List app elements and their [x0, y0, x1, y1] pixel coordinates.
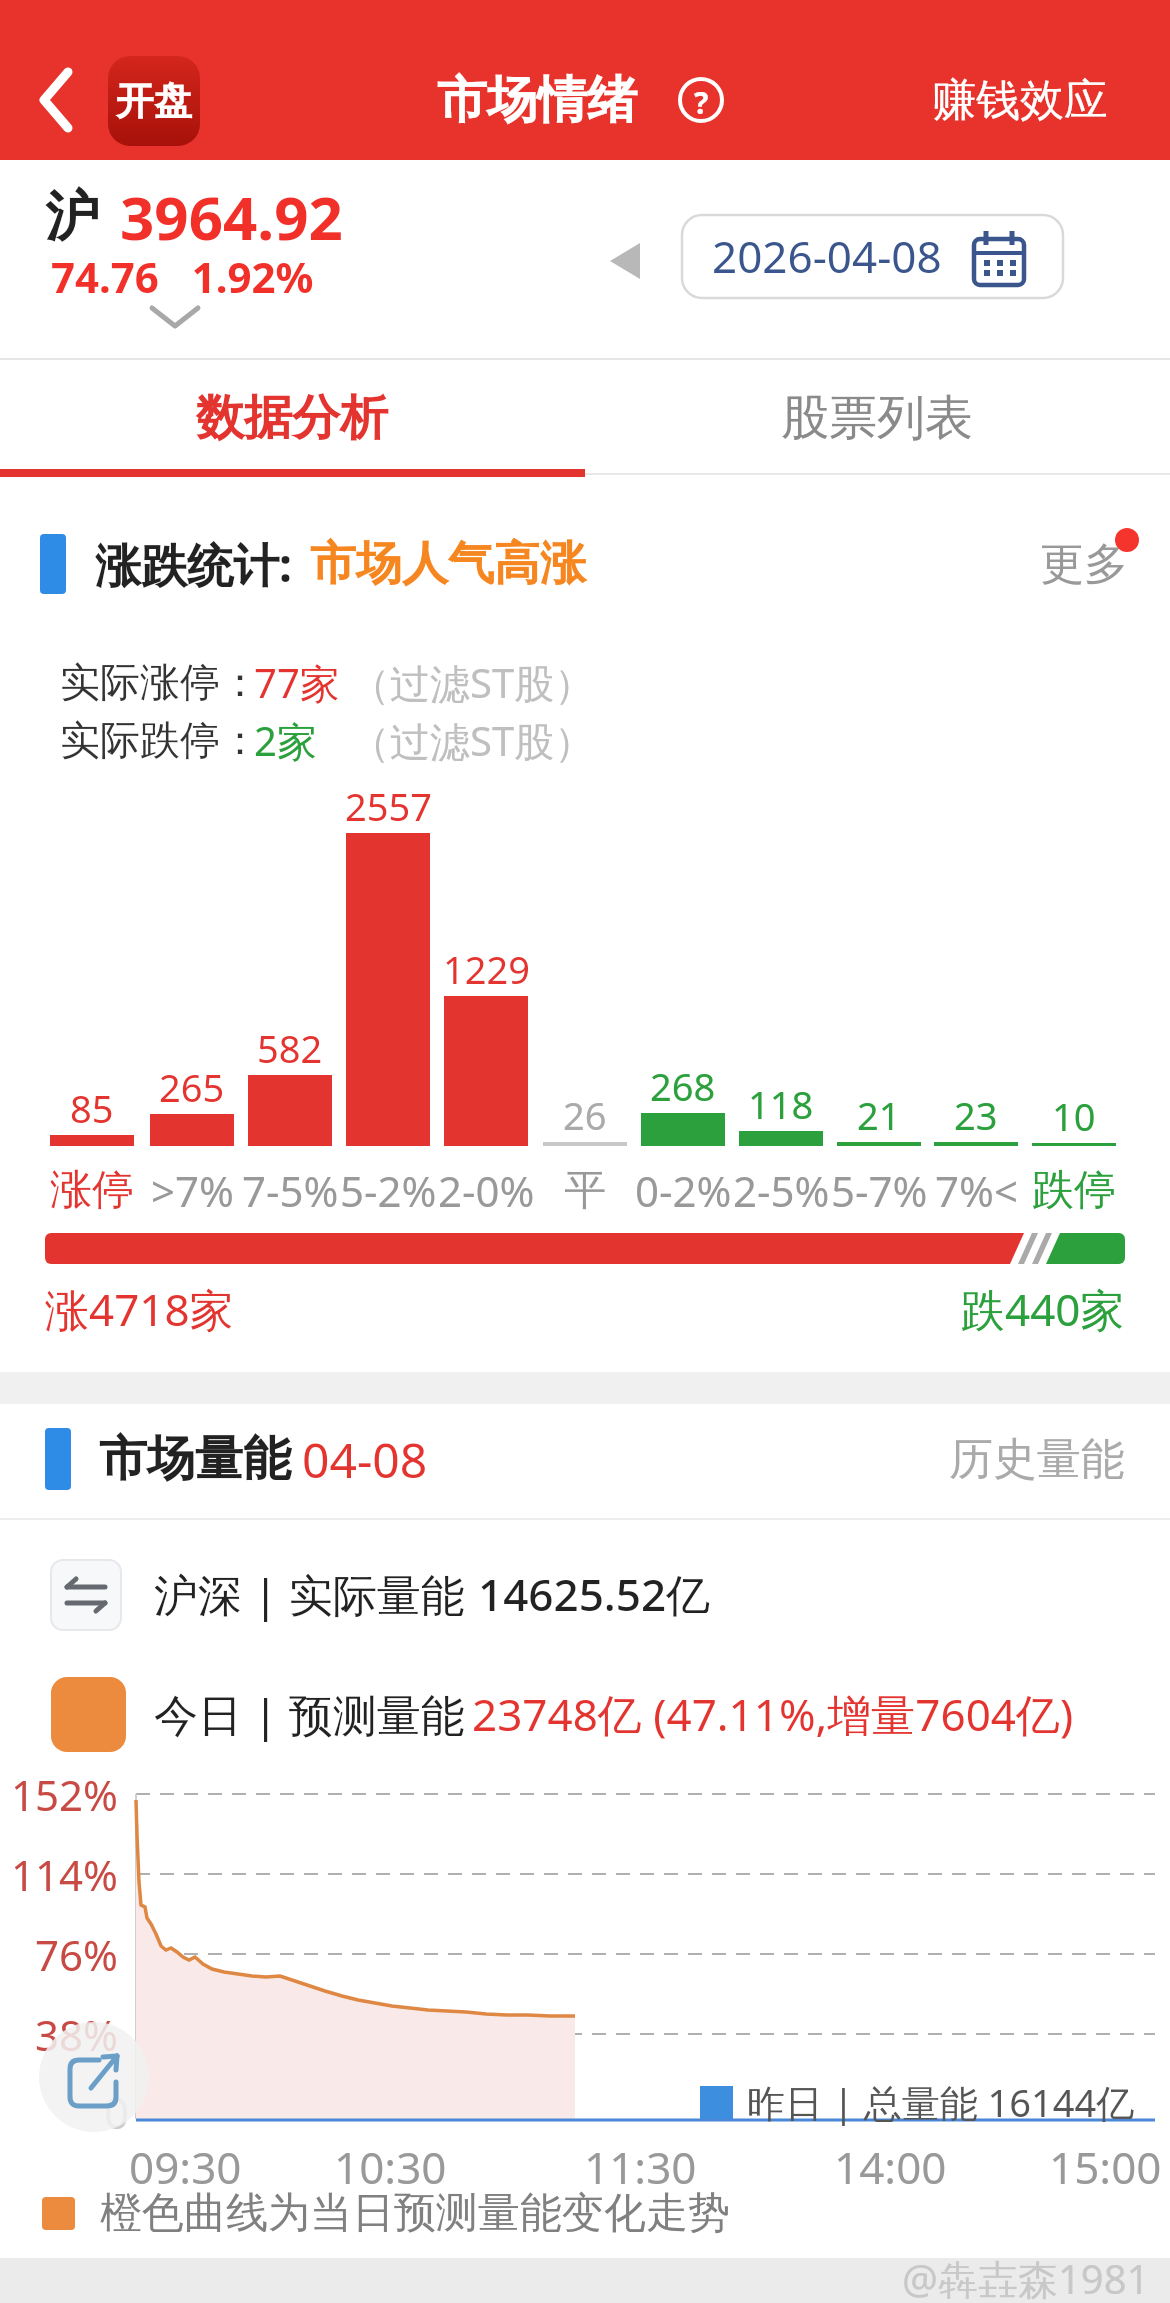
staticText: 0-2%: [635, 1162, 732, 1219]
staticText: 2-5%: [733, 1162, 830, 1219]
staticText: 14:00: [834, 2137, 947, 2197]
staticText: 2026-04-08: [712, 226, 942, 286]
staticText: 265: [159, 1061, 225, 1113]
staticText: 7-5%: [242, 1162, 339, 1219]
staticText: 268: [650, 1060, 716, 1112]
staticText: 74.76 1.92%: [51, 248, 314, 305]
staticText: 582: [257, 1022, 323, 1074]
staticText: 7%<: [935, 1162, 1018, 1219]
staticText: 市场量能: [99, 1429, 291, 1489]
staticText: 15:00: [1049, 2137, 1162, 2197]
button[interactable]: [20, 40, 100, 150]
staticText: 1229: [443, 943, 530, 995]
button[interactable]: [585, 360, 1170, 473]
staticText: 04-08: [302, 1427, 428, 1492]
staticText: 114%: [11, 1846, 118, 1903]
staticText: 橙色曲线为当日预测量能变化走势: [100, 2187, 730, 2240]
staticText: 10: [1052, 1090, 1096, 1142]
staticText: 5-7%: [831, 1162, 928, 1219]
staticText: 更多: [1040, 537, 1128, 592]
staticText: 0: [104, 2082, 130, 2142]
staticText: 历史量能: [949, 1432, 1125, 1487]
staticText: 昨日 | 总量能 16144亿: [747, 2076, 1135, 2128]
staticText: 77家: [254, 655, 340, 710]
button[interactable]: [900, 1410, 1150, 1510]
staticText: 沪深 | 实际量能: [154, 1564, 466, 1624]
staticText: 市场情绪: [437, 69, 637, 132]
button[interactable]: [51, 1560, 121, 1630]
button[interactable]: [682, 215, 1063, 298]
staticText: 实际跌停：: [60, 715, 260, 765]
staticText: 实际涨停：: [60, 657, 260, 707]
staticText: 5-2%: [340, 1162, 437, 1219]
staticText: 2-0%: [438, 1162, 535, 1219]
staticText: 跌停: [1032, 1164, 1116, 1217]
staticText: 股票列表: [781, 388, 973, 448]
staticText: 11:30: [584, 2137, 697, 2197]
staticText: （过滤ST股）: [350, 713, 595, 768]
staticText: 14625.52亿: [478, 1564, 711, 1624]
staticText: 平: [564, 1164, 606, 1217]
staticText: 2557: [345, 780, 432, 832]
staticText: 21: [857, 1089, 901, 1141]
staticText: 涨跌统计:: [95, 533, 292, 596]
staticText: 09:30: [129, 2137, 242, 2197]
button[interactable]: [1000, 510, 1150, 610]
button[interactable]: [920, 55, 1120, 145]
staticText: 152%: [11, 1766, 118, 1823]
staticText: 涨4718家: [45, 1279, 234, 1339]
staticText: 23748亿 (47.11%,增量7604亿): [472, 1684, 1074, 1744]
staticText: 85: [70, 1082, 114, 1134]
staticText: 3964.92: [120, 176, 343, 258]
button[interactable]: [39, 2022, 149, 2132]
staticText: 涨停: [50, 1164, 134, 1217]
staticText: 数据分析: [196, 388, 388, 448]
staticText: 开盘: [116, 77, 192, 125]
staticText: 沪: [45, 183, 99, 251]
staticText: 118: [748, 1078, 814, 1130]
staticText: 跌440家: [961, 1279, 1125, 1339]
staticText: ?: [694, 82, 709, 123]
button[interactable]: [0, 360, 585, 473]
staticText: 10:30: [334, 2137, 447, 2197]
staticText: 今日 | 预测量能: [154, 1684, 466, 1744]
staticText: （过滤ST股）: [350, 655, 595, 710]
staticText: 26: [563, 1089, 607, 1141]
staticText: 2家: [254, 713, 317, 768]
staticText: 38%: [35, 2006, 118, 2063]
staticText: @犇壵森1981: [902, 2251, 1150, 2303]
staticText: 76%: [35, 1926, 118, 1983]
button[interactable]: [51, 1677, 126, 1752]
button[interactable]: 开盘: [108, 56, 200, 146]
staticText: 市场人气高涨: [310, 535, 586, 593]
staticText: >7%: [151, 1162, 234, 1219]
staticText: 23: [954, 1089, 998, 1141]
staticText: 赚钱效应: [932, 73, 1108, 128]
